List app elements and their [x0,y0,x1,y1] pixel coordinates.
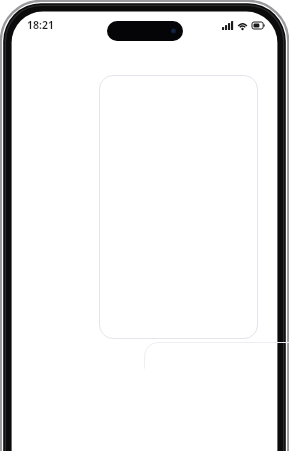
button[interactable] [12,38,277,451]
other: Wi-Fi [237,21,248,30]
staticText: 18:21 [27,18,54,32]
other: Cellular signal [222,21,233,30]
other: Dynamic Island [107,21,183,41]
other: Battery [252,22,265,29]
